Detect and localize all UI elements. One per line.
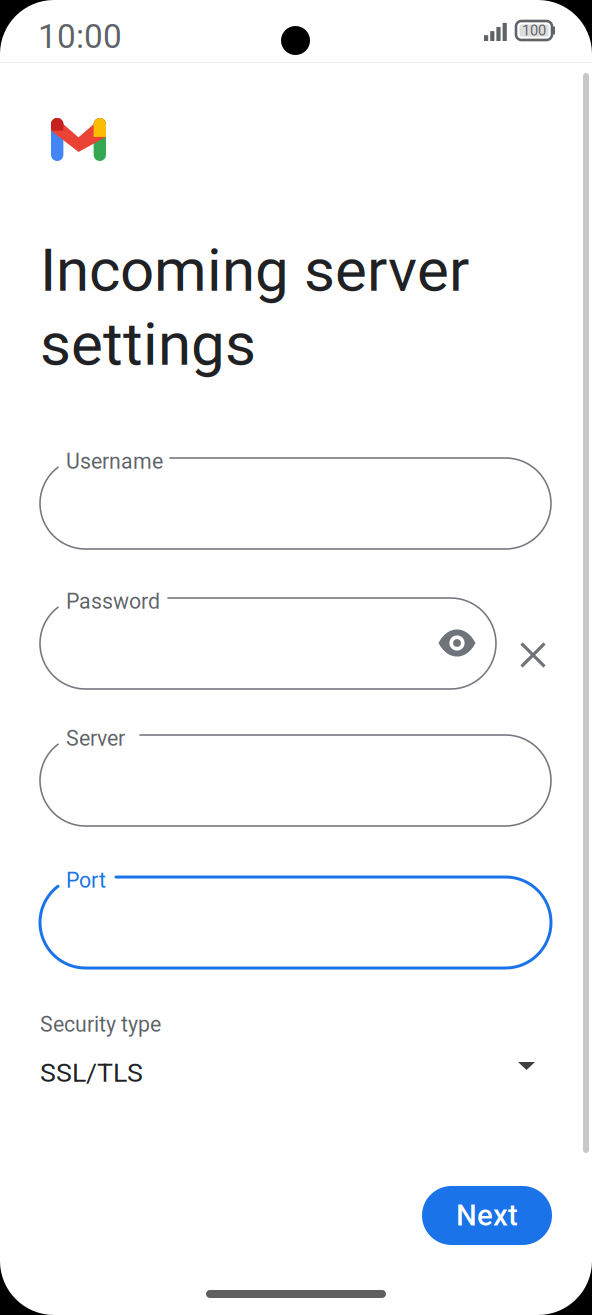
staticText: Password — [66, 589, 160, 614]
staticText: Next — [456, 1198, 518, 1233]
staticText: Port — [66, 868, 106, 893]
staticText: SSL/TLS — [40, 1057, 143, 1088]
staticText: settings — [40, 309, 256, 379]
staticText: Server — [66, 726, 125, 751]
staticText: Incoming server — [40, 235, 469, 305]
staticText: Security type — [40, 1012, 161, 1037]
button[interactable]: Change security type — [0, 0, 592, 1315]
button[interactable]: Next — [422, 1186, 552, 1245]
staticText: Username — [66, 449, 163, 474]
button[interactable]: Show password — [0, 0, 592, 1315]
button[interactable]: Clear password — [0, 0, 592, 1315]
staticText: 10:00 — [38, 17, 122, 56]
staticText: 100 — [522, 22, 546, 39]
